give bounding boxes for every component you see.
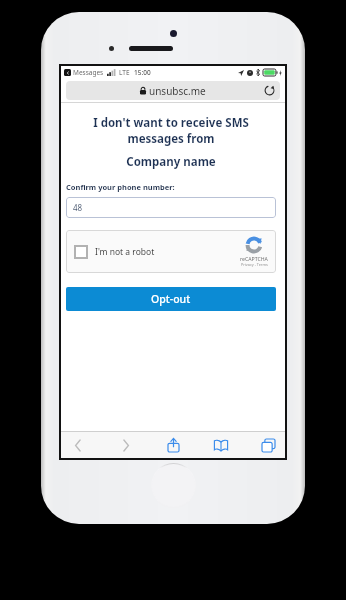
button[interactable]: Share — [164, 436, 182, 454]
staticText: Company name — [66, 154, 276, 170]
button[interactable]: Back — [69, 436, 87, 454]
staticText: LTE — [119, 68, 130, 77]
button[interactable]: Tabs — [259, 436, 277, 454]
button[interactable]: 48 — [66, 197, 276, 218]
staticText: Privacy - Terms — [241, 262, 268, 267]
staticText: 15:00 — [134, 68, 151, 77]
button[interactable]: Forward — [117, 436, 135, 454]
button[interactable]: I'm not a robot checkbox — [74, 245, 88, 259]
staticText: unsubsc.me — [149, 84, 206, 98]
button[interactable]: Reload — [264, 85, 275, 96]
button[interactable]: Opt-out — [66, 287, 276, 311]
staticText: Confirm your phone number: — [66, 182, 175, 192]
button[interactable]: I'm not a robot checkbox — [66, 230, 276, 273]
staticText: Messages — [73, 68, 104, 77]
staticText: reCAPTCHA — [240, 255, 268, 262]
button[interactable]: Bookmarks — [212, 436, 230, 454]
button[interactable]: unsubsc.me — [66, 81, 280, 100]
staticText: 48 — [73, 202, 83, 213]
staticText: I'm not a robot — [95, 246, 155, 258]
staticText: Opt-out — [151, 292, 191, 306]
staticText: I don't want to receive SMS messages fro… — [66, 115, 276, 146]
